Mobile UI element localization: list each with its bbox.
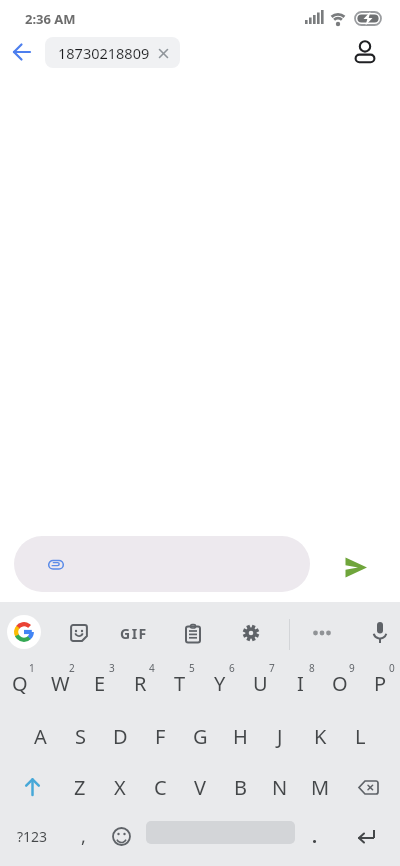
staticText: J [277,723,283,750]
button[interactable] [64,618,94,648]
staticText: P [374,670,387,697]
staticText: 6 [229,661,235,675]
button[interactable]: N [260,767,300,807]
button[interactable]: 18730218809 [45,37,180,68]
button[interactable] [348,767,388,807]
button[interactable]: W [40,663,80,703]
staticText: S [75,723,86,750]
staticText: D [113,723,128,750]
button[interactable]: Z [60,767,100,807]
staticText: 2 [69,661,75,675]
button[interactable]: X [100,767,140,807]
staticText: C [154,774,167,801]
staticText: T [174,670,186,697]
button[interactable] [336,549,376,589]
staticText: 7 [269,661,275,675]
button[interactable]: G [180,716,220,756]
button[interactable]: B [220,767,260,807]
staticText: . [312,824,318,849]
staticText: 0 [389,661,395,675]
staticText: M [311,774,330,801]
staticText: Q [12,670,28,697]
button[interactable]: F [140,716,180,756]
button[interactable]: Q [0,663,40,703]
button[interactable]: , [64,816,102,856]
staticText: 5 [189,661,195,675]
staticText: I [297,670,304,697]
staticText: 8 [309,661,315,675]
staticText: U [253,670,268,697]
button[interactable]: P [360,663,400,703]
button[interactable]: ?123 [8,816,56,856]
button[interactable]: E [80,663,120,703]
button[interactable]: K [300,716,340,756]
staticText: K [314,723,327,750]
button[interactable]: U [240,663,280,703]
button[interactable] [365,618,395,648]
staticText: Y [214,670,226,697]
button[interactable]: A [20,716,60,756]
button[interactable] [236,618,266,648]
button[interactable]: Y [200,663,240,703]
button[interactable]: H [220,716,260,756]
staticText: N [272,774,288,801]
staticText: B [234,774,247,801]
button[interactable] [178,618,208,648]
staticText: F [155,723,166,750]
button[interactable]: T [160,663,200,703]
staticText: E [94,670,106,697]
staticText: 9 [349,661,355,675]
staticText: X [114,774,126,801]
button[interactable] [7,615,41,649]
staticText: 1 [29,661,35,675]
button[interactable]: J [260,716,300,756]
staticText: ?123 [17,827,48,846]
button[interactable] [307,618,337,648]
staticText: V [194,774,206,801]
staticText: 4 [149,661,155,675]
button[interactable]: L [340,716,380,756]
button[interactable]: GIF [114,618,154,648]
button[interactable] [351,38,379,66]
button[interactable]: R [120,663,160,703]
button[interactable] [12,767,52,807]
staticText: Z [74,774,86,801]
staticText: H [233,723,248,750]
button[interactable]: . [300,816,330,856]
button[interactable]: I [280,663,320,703]
staticText: G [193,723,208,750]
staticText: L [355,723,366,750]
button[interactable] [14,536,310,592]
staticText: , [81,824,86,849]
button[interactable]: C [140,767,180,807]
button[interactable]: O [320,663,360,703]
staticText: O [332,670,348,697]
button[interactable] [346,816,388,856]
button[interactable]: V [180,767,220,807]
staticText: 18730218809 [58,43,150,63]
button[interactable] [102,816,140,856]
button[interactable]: S [60,716,100,756]
button[interactable]: M [300,767,340,807]
staticText: 3 [109,661,115,675]
button[interactable] [8,38,36,66]
staticText: R [134,670,147,697]
button[interactable]: D [100,716,140,756]
staticText: W [51,670,70,697]
staticText: A [34,723,47,750]
staticText: 2:36 AM [25,10,76,28]
staticText: GIF [120,624,148,643]
